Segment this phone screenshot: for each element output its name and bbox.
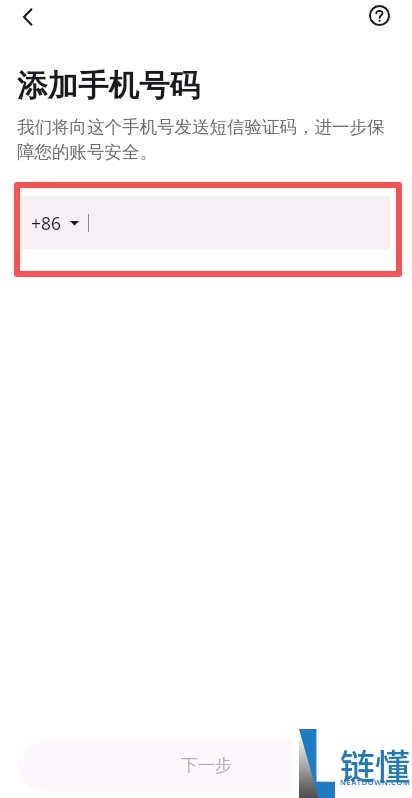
staticText: 下一步 xyxy=(181,755,232,776)
button[interactable]: Back xyxy=(8,0,48,34)
staticText: 添加手机号码 xyxy=(17,67,200,105)
staticText: 链懂 xyxy=(340,739,411,790)
staticText: 我们将向这个手机号发送短信验证码，进一步保障您的账号安全。 xyxy=(17,116,395,164)
staticText: NEATDOWN.COM xyxy=(340,777,411,787)
staticText: +86 xyxy=(31,211,62,235)
button[interactable]: 下一步 xyxy=(19,740,393,791)
button[interactable]: +86 xyxy=(20,196,390,249)
button[interactable]: Help xyxy=(361,0,397,32)
